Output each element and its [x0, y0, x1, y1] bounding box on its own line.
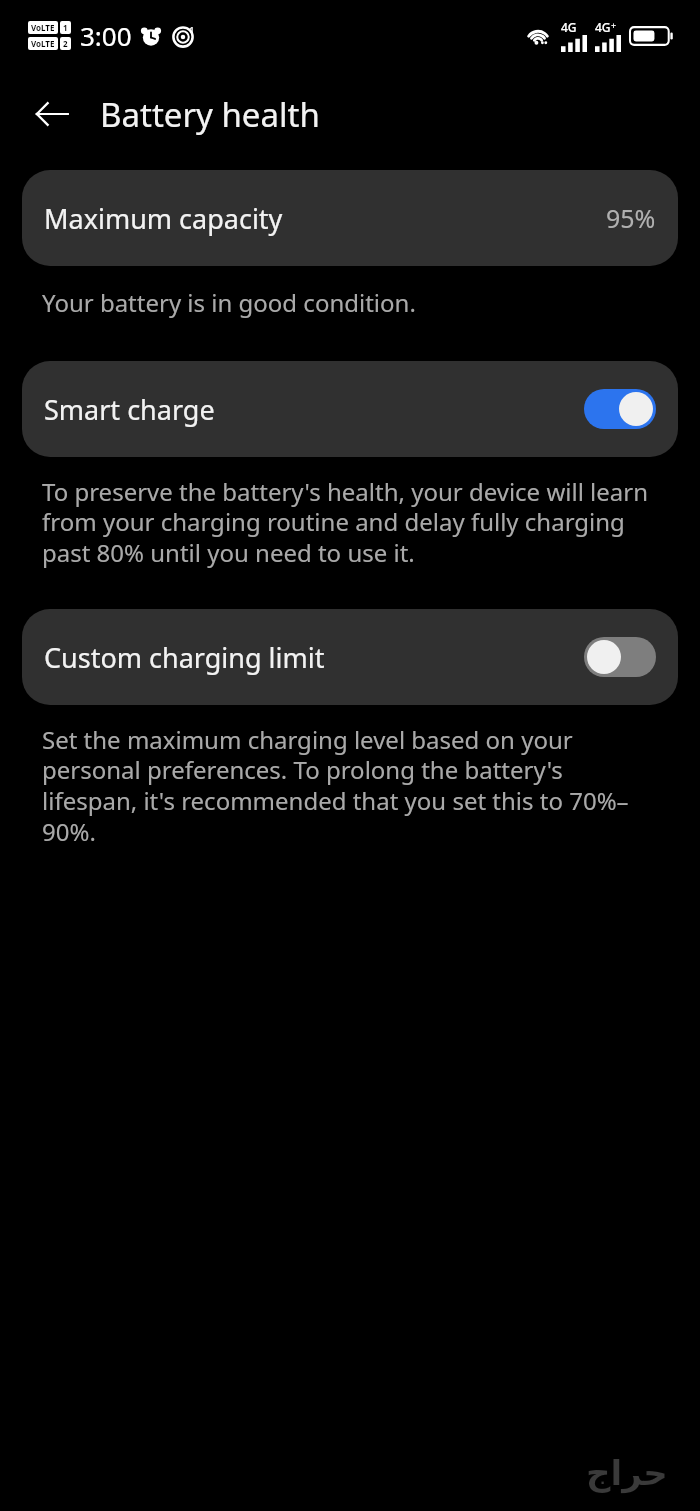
- staticText: 95%: [606, 201, 656, 235]
- staticText: +: [611, 19, 617, 31]
- staticText: 3:00: [80, 18, 132, 53]
- button[interactable]: Off: [584, 637, 656, 677]
- staticText: Maximum capacity: [44, 200, 283, 237]
- staticText: 1: [189, 24, 195, 38]
- staticText: حراج: [586, 1453, 668, 1493]
- button[interactable]: Maximum capacity: [22, 170, 678, 266]
- button[interactable]: Smart charge: [22, 361, 678, 457]
- staticText: 4G: [595, 19, 611, 35]
- staticText: Set the maximum charging level based on …: [42, 723, 658, 848]
- staticText: Battery health: [100, 92, 320, 137]
- staticText: Custom charging limit: [44, 639, 325, 676]
- button[interactable]: On: [584, 389, 656, 429]
- button[interactable]: Back: [26, 88, 78, 140]
- staticText: Your battery is in good condition.: [42, 286, 416, 319]
- staticText: To preserve the battery's health, your d…: [42, 475, 658, 569]
- staticText: 2: [63, 38, 68, 49]
- staticText: Smart charge: [44, 391, 215, 428]
- staticText: 1: [63, 22, 68, 33]
- staticText: VoLTE: [31, 22, 55, 33]
- staticText: 4G: [561, 19, 577, 35]
- button[interactable]: Custom charging limit: [22, 609, 678, 705]
- staticText: VoLTE: [31, 38, 55, 49]
